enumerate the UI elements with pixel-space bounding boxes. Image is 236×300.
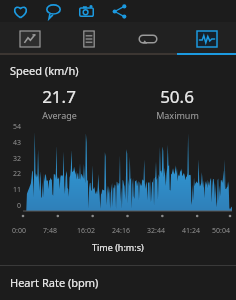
staticText: 22 <box>12 169 21 179</box>
staticText: Maximum <box>156 109 199 121</box>
staticText: 21.7 <box>42 85 76 108</box>
button[interactable]: Details <box>59 22 118 55</box>
staticText: 32:44 <box>147 226 165 236</box>
staticText: 0 <box>16 201 21 211</box>
staticText: 50:04 <box>212 226 230 236</box>
staticText: Speed (km/h) <box>10 63 79 78</box>
button[interactable]: Laps <box>0 22 59 55</box>
staticText: Time (h:m:s) <box>92 241 144 253</box>
staticText: Average <box>42 109 77 121</box>
button[interactable]: Photo <box>77 2 96 21</box>
staticText: 7:48 <box>43 226 57 236</box>
staticText: 0:00 <box>12 226 26 236</box>
button[interactable]: Comment <box>44 2 63 21</box>
staticText: Heart Rate (bpm) <box>10 275 99 290</box>
button[interactable]: Route <box>118 22 177 55</box>
staticText: 54 <box>12 122 21 132</box>
button[interactable]: Share <box>110 2 129 21</box>
staticText: 32 <box>12 154 21 164</box>
staticText: 24:16 <box>112 226 130 236</box>
button[interactable]: Like <box>11 2 30 21</box>
staticText: 43 <box>12 138 21 148</box>
staticText: 41:24 <box>182 226 200 236</box>
staticText: 50.6 <box>160 85 194 108</box>
staticText: 16:02 <box>77 226 95 236</box>
staticText: 11 <box>12 185 21 195</box>
button[interactable]: Graphs <box>177 22 236 55</box>
